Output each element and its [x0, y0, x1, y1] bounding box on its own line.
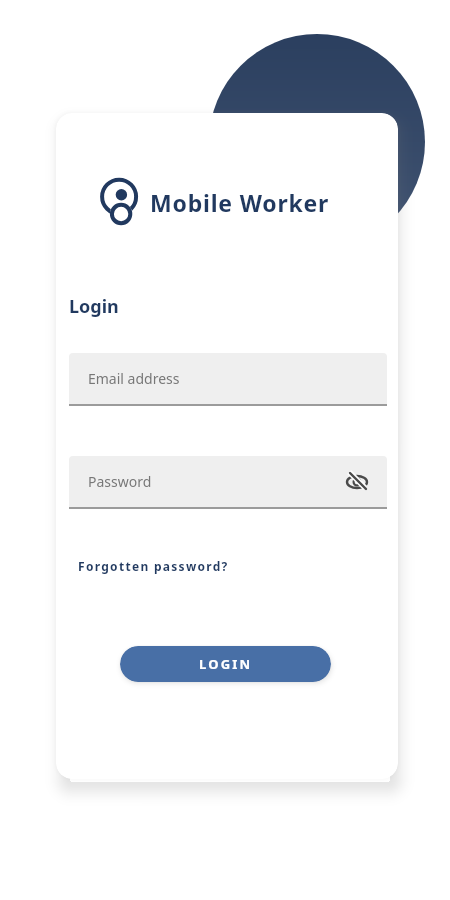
staticText: LOGIN [199, 655, 253, 673]
staticText: Password [88, 472, 152, 491]
button[interactable]: Password [69, 456, 387, 509]
button[interactable]: LOGIN [120, 646, 331, 682]
staticText: Email address [88, 369, 180, 388]
staticText: Login [69, 294, 119, 319]
button[interactable]: Forgotten password? [78, 558, 229, 574]
staticText: Mobile Worker [150, 187, 330, 218]
button[interactable]: Email address [69, 353, 387, 406]
